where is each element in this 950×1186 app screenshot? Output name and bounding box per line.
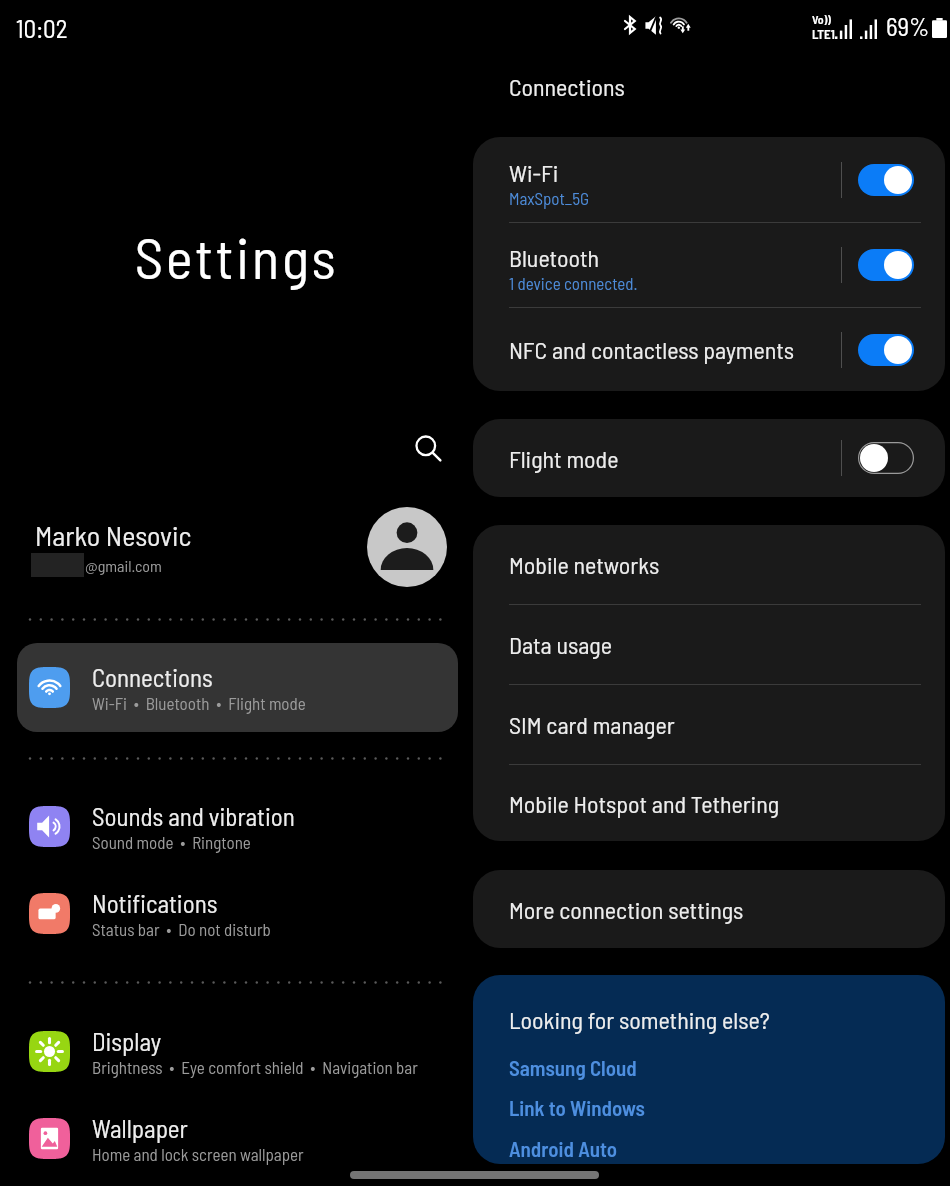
staticText: Flight mode: [509, 444, 619, 473]
staticText: Mobile Hotspot and Tethering: [509, 789, 780, 818]
staticText: Wi-Fi: [509, 158, 559, 187]
staticText: Notifications: [92, 888, 218, 918]
staticText: 10:02: [16, 13, 68, 43]
staticText: SIM card manager: [509, 710, 675, 739]
staticText: Wallpaper: [92, 1113, 188, 1143]
staticText: @gmail.com: [85, 556, 162, 575]
button[interactable]: Link to Windows: [509, 1095, 645, 1120]
staticText: Bluetooth: [509, 243, 600, 272]
staticText: MaxSpot_5G: [509, 188, 590, 208]
button[interactable]: Search: [408, 428, 448, 468]
button[interactable]: Toggle on: [858, 334, 914, 366]
button[interactable]: Android Auto: [509, 1136, 618, 1161]
staticText: Sound mode • Ringtone: [92, 832, 251, 852]
staticText: Android Auto: [509, 1136, 618, 1161]
staticText: More connection settings: [509, 895, 744, 924]
button[interactable]: Connections: [17, 643, 458, 732]
button[interactable]: SIM card manager: [473, 685, 945, 764]
staticText: Brightness • Eye comfort shield • Naviga…: [92, 1057, 418, 1077]
staticText: Looking for something else?: [509, 1005, 770, 1034]
button[interactable]: Toggle on: [858, 164, 914, 196]
button[interactable]: Mobile Hotspot and Tethering: [473, 765, 945, 841]
button[interactable]: Wallpaper: [0, 1098, 473, 1178]
button[interactable]: More connection settings: [473, 870, 945, 948]
button[interactable]: Toggle off: [858, 442, 914, 474]
staticText: Connections: [92, 662, 213, 692]
button[interactable]: Samsung Cloud: [509, 1055, 637, 1080]
staticText: Status bar • Do not disturb: [92, 919, 271, 939]
staticText: Settings: [0, 222, 473, 290]
button[interactable]: Toggle on: [858, 249, 914, 281]
staticText: Vo)): [812, 12, 831, 26]
button[interactable]: Bluetooth: [473, 223, 945, 307]
button[interactable]: Display: [0, 1011, 473, 1091]
staticText: Mobile networks: [509, 550, 660, 579]
button[interactable]: Wi-Fi: [473, 137, 945, 222]
staticText: NFC and contactless payments: [509, 335, 795, 364]
button[interactable]: Notifications: [0, 873, 473, 953]
staticText: Data usage: [509, 630, 612, 659]
button[interactable]: Data usage: [473, 605, 945, 684]
staticText: 69%: [886, 11, 930, 41]
staticText: Marko Nesovic: [35, 518, 192, 552]
button[interactable]: Marko Nesovic: [0, 503, 473, 591]
staticText: LTE1: [812, 26, 835, 42]
staticText: 1 device connected.: [509, 273, 638, 293]
staticText: Display: [92, 1026, 162, 1056]
button[interactable]: Sounds and vibration: [0, 786, 473, 866]
button[interactable]: NFC and contactless payments: [473, 308, 945, 391]
button[interactable]: Mobile networks: [473, 525, 945, 604]
staticText: Samsung Cloud: [509, 1055, 637, 1080]
staticText: Home and lock screen wallpaper: [92, 1144, 304, 1164]
staticText: Sounds and vibration: [92, 801, 295, 831]
staticText: Connections: [509, 72, 625, 101]
staticText: Link to Windows: [509, 1095, 645, 1120]
staticText: Wi-Fi • Bluetooth • Flight mode: [92, 693, 306, 713]
button[interactable]: Flight mode: [473, 419, 945, 497]
